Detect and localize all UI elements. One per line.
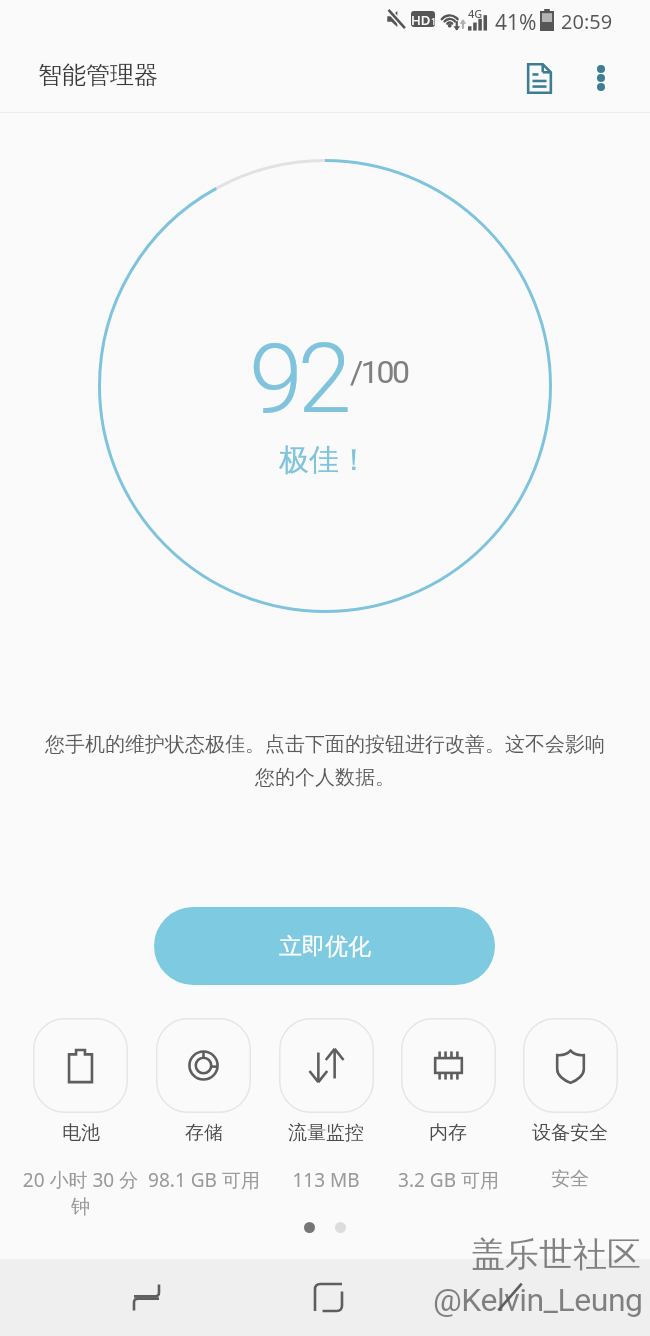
staticText: 极佳！ [279,441,369,479]
staticText: 20 小时 30 分钟 [19,1167,142,1218]
button[interactable]: Back [474,1261,546,1333]
button[interactable]: 内存 [387,1018,509,1193]
staticText: 立即优化 [279,932,371,961]
staticText: 20:59 [561,8,613,35]
staticText: 您的个人数据。 [255,765,395,790]
button[interactable]: 流量监控 [265,1018,387,1193]
staticText: 安全 [551,1167,589,1191]
staticText: 流量监控 [288,1121,364,1145]
staticText: @Kelvin_Leung [433,1281,643,1319]
staticText: HD [411,11,431,27]
staticText: 41% [495,8,537,37]
button[interactable]: 存储 [142,1018,265,1193]
button[interactable]: Home [292,1261,364,1333]
button[interactable]: 设备安全 [509,1018,631,1191]
button[interactable]: Report [505,48,573,108]
staticText: 设备安全 [532,1121,608,1145]
staticText: 92 [249,322,347,436]
button[interactable]: Recents [110,1261,182,1333]
staticText: /100 [350,353,408,391]
button[interactable]: More options [573,48,628,108]
staticText: 电池 [62,1121,100,1145]
staticText: 4G [468,6,483,21]
button[interactable]: 电池 [19,1018,142,1218]
staticText: 内存 [429,1121,467,1145]
staticText: 113 MB [292,1167,360,1193]
staticText: 1 [431,15,435,27]
staticText: 98.1 GB 可用 [148,1167,260,1193]
staticText: 3.2 GB 可用 [398,1167,499,1193]
staticText: 存储 [185,1121,223,1145]
staticText: 您手机的维护状态极佳。点击下面的按钮进行改善。这不会影响 [45,732,605,757]
button[interactable]: 立即优化 [154,907,495,985]
staticText: 智能管理器 [38,60,158,90]
staticText: 盖乐世社区 [471,1233,641,1276]
